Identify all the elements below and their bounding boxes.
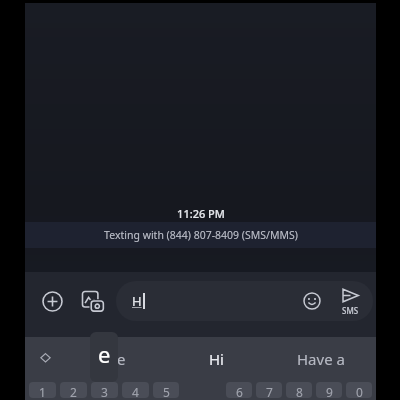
button[interactable]: 4 <box>122 382 149 398</box>
button[interactable]: 0 <box>346 382 372 398</box>
staticText: H <box>132 292 142 310</box>
staticText: 4 <box>132 384 139 398</box>
button[interactable]: Emoji <box>295 284 329 318</box>
button[interactable]: 2 <box>60 382 87 398</box>
button[interactable]: 9 <box>316 382 342 398</box>
staticText: 9 <box>326 384 333 398</box>
button[interactable]: Hi <box>209 349 224 369</box>
staticText: 3 <box>101 384 108 398</box>
button[interactable]: H <box>116 281 373 321</box>
staticText: 8 <box>296 384 303 398</box>
button[interactable]: He <box>106 349 126 369</box>
button[interactable]: 6 <box>226 382 252 398</box>
button[interactable]: 1 <box>29 382 56 398</box>
button[interactable]: Expand suggestions <box>25 337 65 380</box>
button[interactable]: 8 <box>286 382 312 398</box>
staticText: e <box>98 339 111 369</box>
staticText: 0 <box>356 384 363 398</box>
staticText: 1 <box>39 384 46 398</box>
staticText: Texting with (844) 807-8409 (SMS/MMS) <box>104 228 298 242</box>
staticText: 6 <box>236 384 243 398</box>
button[interactable]: Add attachment <box>34 283 70 319</box>
button[interactable]: Send SMS <box>329 281 371 321</box>
button[interactable]: Gallery and camera <box>75 283 111 319</box>
staticText: 11:26 PM <box>177 206 225 221</box>
staticText: 2 <box>70 384 77 398</box>
button[interactable]: 5 <box>153 382 179 398</box>
staticText: 7 <box>266 384 273 398</box>
button[interactable]: Have a <box>297 349 345 369</box>
button[interactable]: 3 <box>91 382 118 398</box>
staticText: 5 <box>163 384 170 398</box>
staticText: SMS <box>342 305 359 316</box>
button[interactable]: 7 <box>256 382 282 398</box>
